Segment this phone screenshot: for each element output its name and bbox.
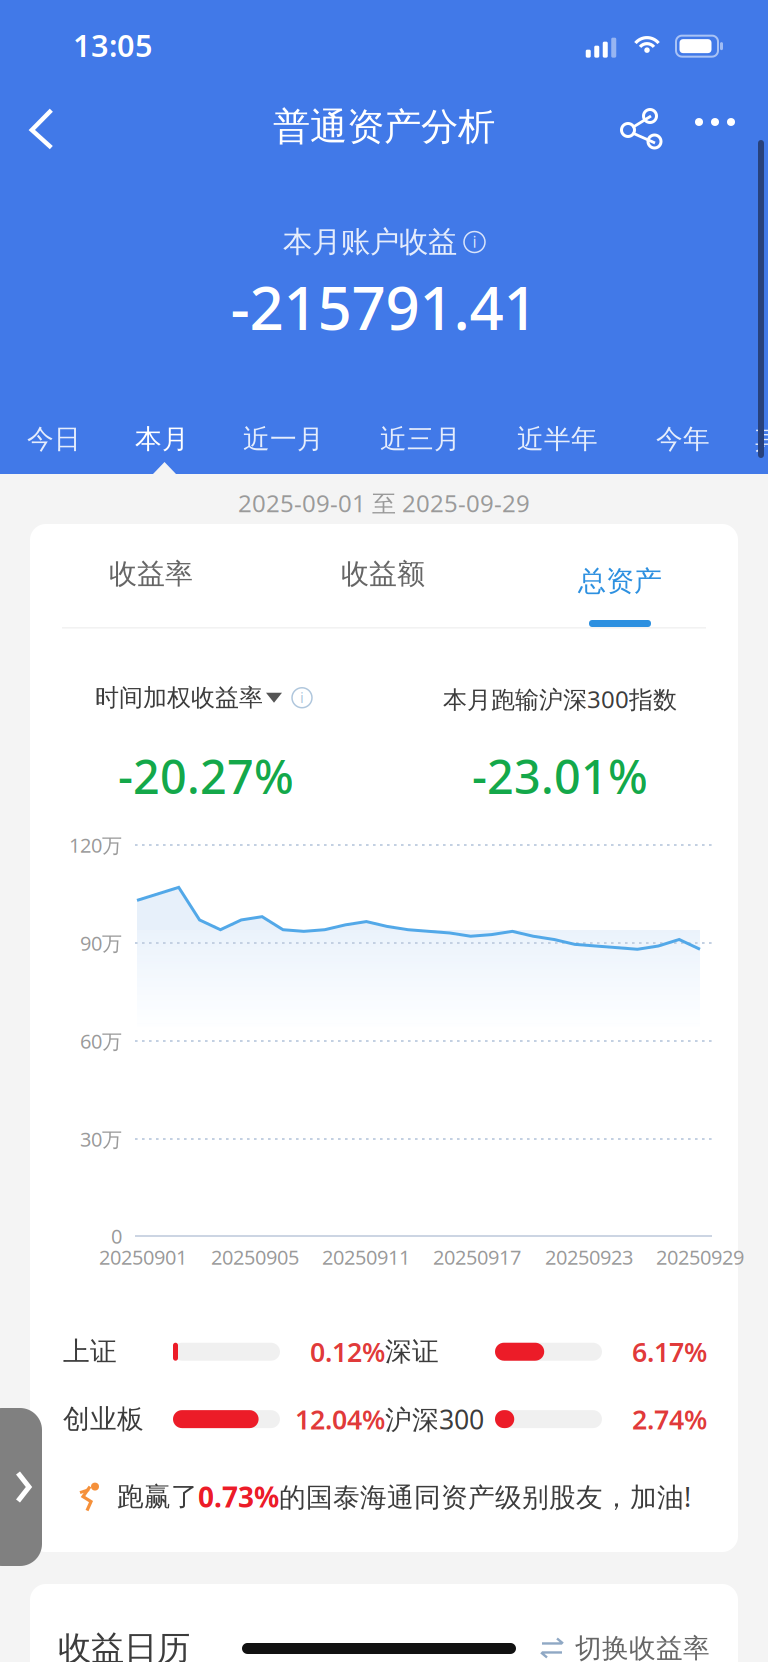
button[interactable]: 近一月 xyxy=(243,412,324,466)
staticText: 上证 xyxy=(63,1335,117,1368)
button[interactable]: 今日 xyxy=(27,412,81,466)
staticText: 今年 xyxy=(656,423,710,455)
staticText: 时间加权收益率 xyxy=(95,683,263,712)
staticText: -215791.41 xyxy=(230,267,537,347)
staticText: 深证 xyxy=(385,1335,439,1368)
staticText: i xyxy=(472,231,476,252)
button[interactable]: 本月 xyxy=(135,412,189,466)
staticText: 近一月 xyxy=(243,423,324,455)
staticText: 0.12% xyxy=(310,1334,385,1369)
staticText: 0 xyxy=(111,1223,122,1249)
staticText: 6.17% xyxy=(632,1334,707,1369)
staticText: 60万 xyxy=(80,1028,122,1054)
staticText: 今日 xyxy=(27,423,81,455)
staticText: 收益率 xyxy=(109,557,193,591)
staticText: i xyxy=(300,687,304,707)
staticText: 收益额 xyxy=(341,557,425,591)
staticText: 20250905 xyxy=(211,1244,299,1270)
staticText: 20250923 xyxy=(545,1244,633,1270)
button[interactable]: 今年 xyxy=(656,412,710,466)
button[interactable]: 展开 xyxy=(0,1408,42,1566)
staticText: 2025-09-01 至 2025-09-29 xyxy=(238,487,530,519)
staticText: 普通资产分析 xyxy=(273,104,495,150)
staticText: 20250917 xyxy=(433,1244,521,1270)
staticText: 沪深300 xyxy=(385,1401,484,1437)
staticText: -23.01% xyxy=(472,745,648,807)
staticText: 20250911 xyxy=(322,1244,410,1270)
staticText: 的国泰海通同资产级别股友，加油! xyxy=(279,1479,691,1514)
staticText: 本月 xyxy=(135,423,189,455)
button[interactable]: 近三月 xyxy=(380,412,461,466)
staticText: 创业板 xyxy=(63,1403,144,1435)
staticText: -20.27% xyxy=(118,745,294,807)
staticText: 本月账户收益 xyxy=(283,224,457,260)
staticText: 总资产 xyxy=(578,564,662,598)
button[interactable]: 切换收益率 xyxy=(540,1632,710,1662)
staticText: 2.74% xyxy=(632,1401,707,1437)
button[interactable]: 其 xyxy=(755,412,768,466)
button[interactable]: 返回 xyxy=(10,90,74,154)
staticText: 20250929 xyxy=(656,1244,744,1270)
staticText: 90万 xyxy=(80,930,122,956)
staticText: 收益日历 xyxy=(58,1628,190,1662)
button[interactable]: 收益额 xyxy=(283,524,483,624)
button[interactable]: 分享 xyxy=(611,90,671,154)
staticText: 120万 xyxy=(69,832,122,858)
staticText: 本月跑输沪深300指数 xyxy=(443,683,677,715)
button[interactable]: 收益率 xyxy=(51,524,251,624)
staticText: 13:05 xyxy=(73,25,153,65)
button[interactable]: 更多 xyxy=(680,90,750,154)
staticText: 其 xyxy=(755,423,768,455)
staticText: 30万 xyxy=(80,1126,122,1152)
staticText: 20250901 xyxy=(99,1244,187,1270)
button[interactable]: 总资产 xyxy=(520,524,720,627)
staticText: 切换收益率 xyxy=(575,1632,710,1662)
button[interactable]: 近半年 xyxy=(517,412,598,466)
staticText: 0.73% xyxy=(198,1478,279,1515)
staticText: 跑赢了 xyxy=(117,1480,198,1513)
staticText: 近三月 xyxy=(380,423,461,455)
staticText: 12.04% xyxy=(295,1401,385,1437)
staticText: 近半年 xyxy=(517,423,598,455)
